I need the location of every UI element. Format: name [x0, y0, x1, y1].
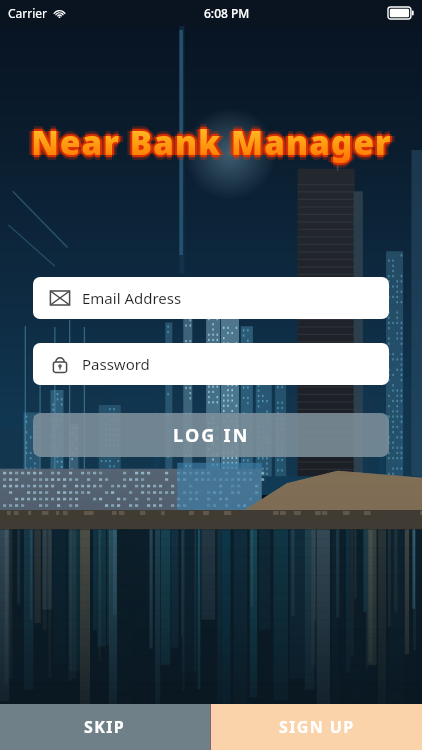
staticText: Password	[82, 354, 150, 374]
staticText: Near Bank Manager	[33, 120, 394, 165]
staticText: Email Address	[82, 288, 182, 308]
staticText: Near Bank Manager	[33, 118, 394, 163]
staticText: Near Bank Manager	[31, 115, 392, 160]
staticText: Near Bank Manager	[36, 120, 397, 165]
staticText: Near Bank Manager	[29, 118, 390, 163]
staticText: Near Bank Manager	[31, 118, 392, 163]
button[interactable]: Email Address	[33, 277, 389, 319]
staticText: Near Bank Manager	[29, 120, 390, 165]
staticText: Near Bank Manager	[31, 120, 392, 165]
staticText: Near Bank Manager	[31, 122, 392, 167]
staticText: Near Bank Manager	[33, 122, 394, 167]
staticText: Carrier	[8, 5, 48, 21]
staticText: Near Bank Manager	[31, 123, 392, 168]
staticText: Near Bank Manager	[34, 120, 395, 165]
staticText: LOG IN	[173, 423, 250, 448]
button[interactable]: SIGN UP	[211, 704, 422, 750]
staticText: Near Bank Manager	[31, 117, 392, 162]
staticText: Near Bank Manager	[31, 125, 392, 170]
button[interactable]: Password	[33, 343, 389, 385]
staticText: Near Bank Manager	[26, 120, 387, 165]
staticText: SKIP	[84, 716, 126, 738]
staticText: Near Bank Manager	[28, 120, 389, 165]
staticText: SIGN UP	[279, 716, 355, 738]
button[interactable]: SKIP	[0, 704, 210, 750]
staticText: 6:08 PM	[204, 5, 250, 21]
button[interactable]: LOG IN	[33, 413, 389, 457]
staticText: Near Bank Manager	[29, 122, 390, 167]
